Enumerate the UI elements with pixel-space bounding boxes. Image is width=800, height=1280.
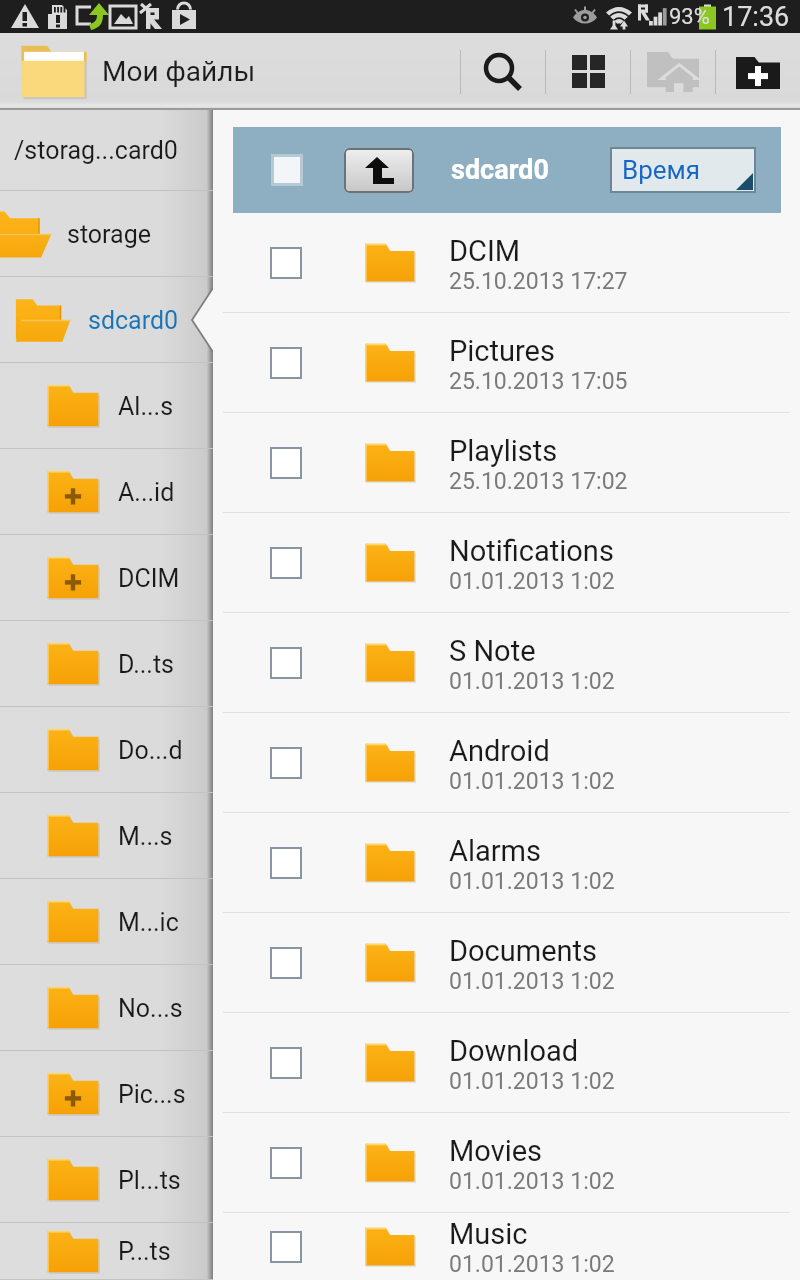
button[interactable]: Pic...s	[0, 1051, 213, 1137]
staticText: Al...s	[118, 392, 174, 421]
button[interactable]: Время	[610, 147, 756, 193]
staticText: /storag...card0	[14, 136, 178, 165]
button[interactable]: No...s	[0, 965, 213, 1051]
button[interactable]: A...id	[0, 449, 213, 535]
staticText: Alarms	[449, 834, 541, 868]
button[interactable]: P...ts	[0, 1223, 213, 1280]
button[interactable]: storage	[0, 191, 213, 277]
staticText: 01.01.2013 1:02	[449, 1068, 615, 1095]
staticText: Pictures	[449, 334, 555, 368]
button[interactable]: Notifications	[213, 513, 800, 613]
staticText: 25.10.2013 17:05	[449, 368, 628, 395]
staticText: Music	[449, 1217, 528, 1251]
button[interactable]: D...ts	[0, 621, 213, 707]
staticText: sdcard0	[451, 154, 550, 186]
button[interactable]: sdcard0	[0, 277, 213, 363]
staticText: 01.01.2013 1:02	[449, 968, 615, 995]
button[interactable]: M...s	[0, 793, 213, 879]
staticText: A...id	[118, 478, 175, 507]
button[interactable]: S Note	[213, 613, 800, 713]
staticText: 93%	[669, 4, 710, 30]
button[interactable]: Home folder	[631, 34, 715, 109]
button[interactable]: Movies	[213, 1113, 800, 1213]
button[interactable]: New folder	[716, 34, 800, 109]
button[interactable]: Playlists	[213, 413, 800, 513]
staticText: Documents	[449, 934, 598, 968]
button[interactable]: /storag...card0	[0, 110, 213, 191]
button[interactable]: Music	[213, 1213, 800, 1280]
staticText: Playlists	[449, 434, 558, 468]
button[interactable]: Search	[461, 34, 545, 109]
button[interactable]: M...ic	[0, 879, 213, 965]
staticText: P...ts	[118, 1237, 171, 1266]
staticText: Pl...ts	[118, 1166, 181, 1195]
staticText: 01.01.2013 1:02	[449, 868, 615, 895]
button[interactable]: Мои файлы	[0, 33, 264, 110]
staticText: Movies	[449, 1134, 543, 1168]
staticText: No...s	[118, 994, 183, 1023]
button[interactable]: DCIM	[0, 535, 213, 621]
staticText: 01.01.2013 1:02	[449, 568, 615, 595]
button[interactable]: Al...s	[0, 363, 213, 449]
button[interactable]: Documents	[213, 913, 800, 1013]
staticText: sdcard0	[88, 306, 179, 335]
button[interactable]: Alarms	[213, 813, 800, 913]
button[interactable]: Android	[213, 713, 800, 813]
staticText: Download	[449, 1034, 579, 1068]
staticText: Android	[449, 734, 550, 768]
button[interactable]: Do...d	[0, 707, 213, 793]
staticText: DCIM	[449, 234, 521, 268]
staticText: Время	[622, 155, 701, 185]
button[interactable]: Grid view	[546, 34, 630, 109]
button[interactable]: Pl...ts	[0, 1137, 213, 1223]
button[interactable]: DCIM	[213, 213, 800, 313]
staticText: Pic...s	[118, 1080, 186, 1109]
staticText: 17:36	[722, 1, 790, 33]
staticText: storage	[67, 220, 151, 249]
button[interactable]: Up one level	[344, 148, 414, 193]
staticText: 01.01.2013 1:02	[449, 668, 615, 695]
staticText: DCIM	[118, 564, 180, 593]
staticText: M...s	[118, 822, 173, 851]
staticText: 01.01.2013 1:02	[449, 768, 615, 795]
staticText: S Note	[449, 634, 536, 668]
button[interactable]: Select all	[271, 154, 303, 186]
staticText: 01.01.2013 1:02	[449, 1251, 615, 1278]
staticText: M...ic	[118, 908, 179, 937]
staticText: Do...d	[118, 736, 183, 765]
staticText: D...ts	[118, 650, 175, 679]
staticText: 01.01.2013 1:02	[449, 1168, 615, 1195]
staticText: Мои файлы	[102, 55, 256, 88]
button[interactable]: Download	[213, 1013, 800, 1113]
staticText: Notifications	[449, 534, 614, 568]
button[interactable]: Pictures	[213, 313, 800, 413]
staticText: 25.10.2013 17:27	[449, 268, 628, 295]
staticText: 25.10.2013 17:02	[449, 468, 628, 495]
